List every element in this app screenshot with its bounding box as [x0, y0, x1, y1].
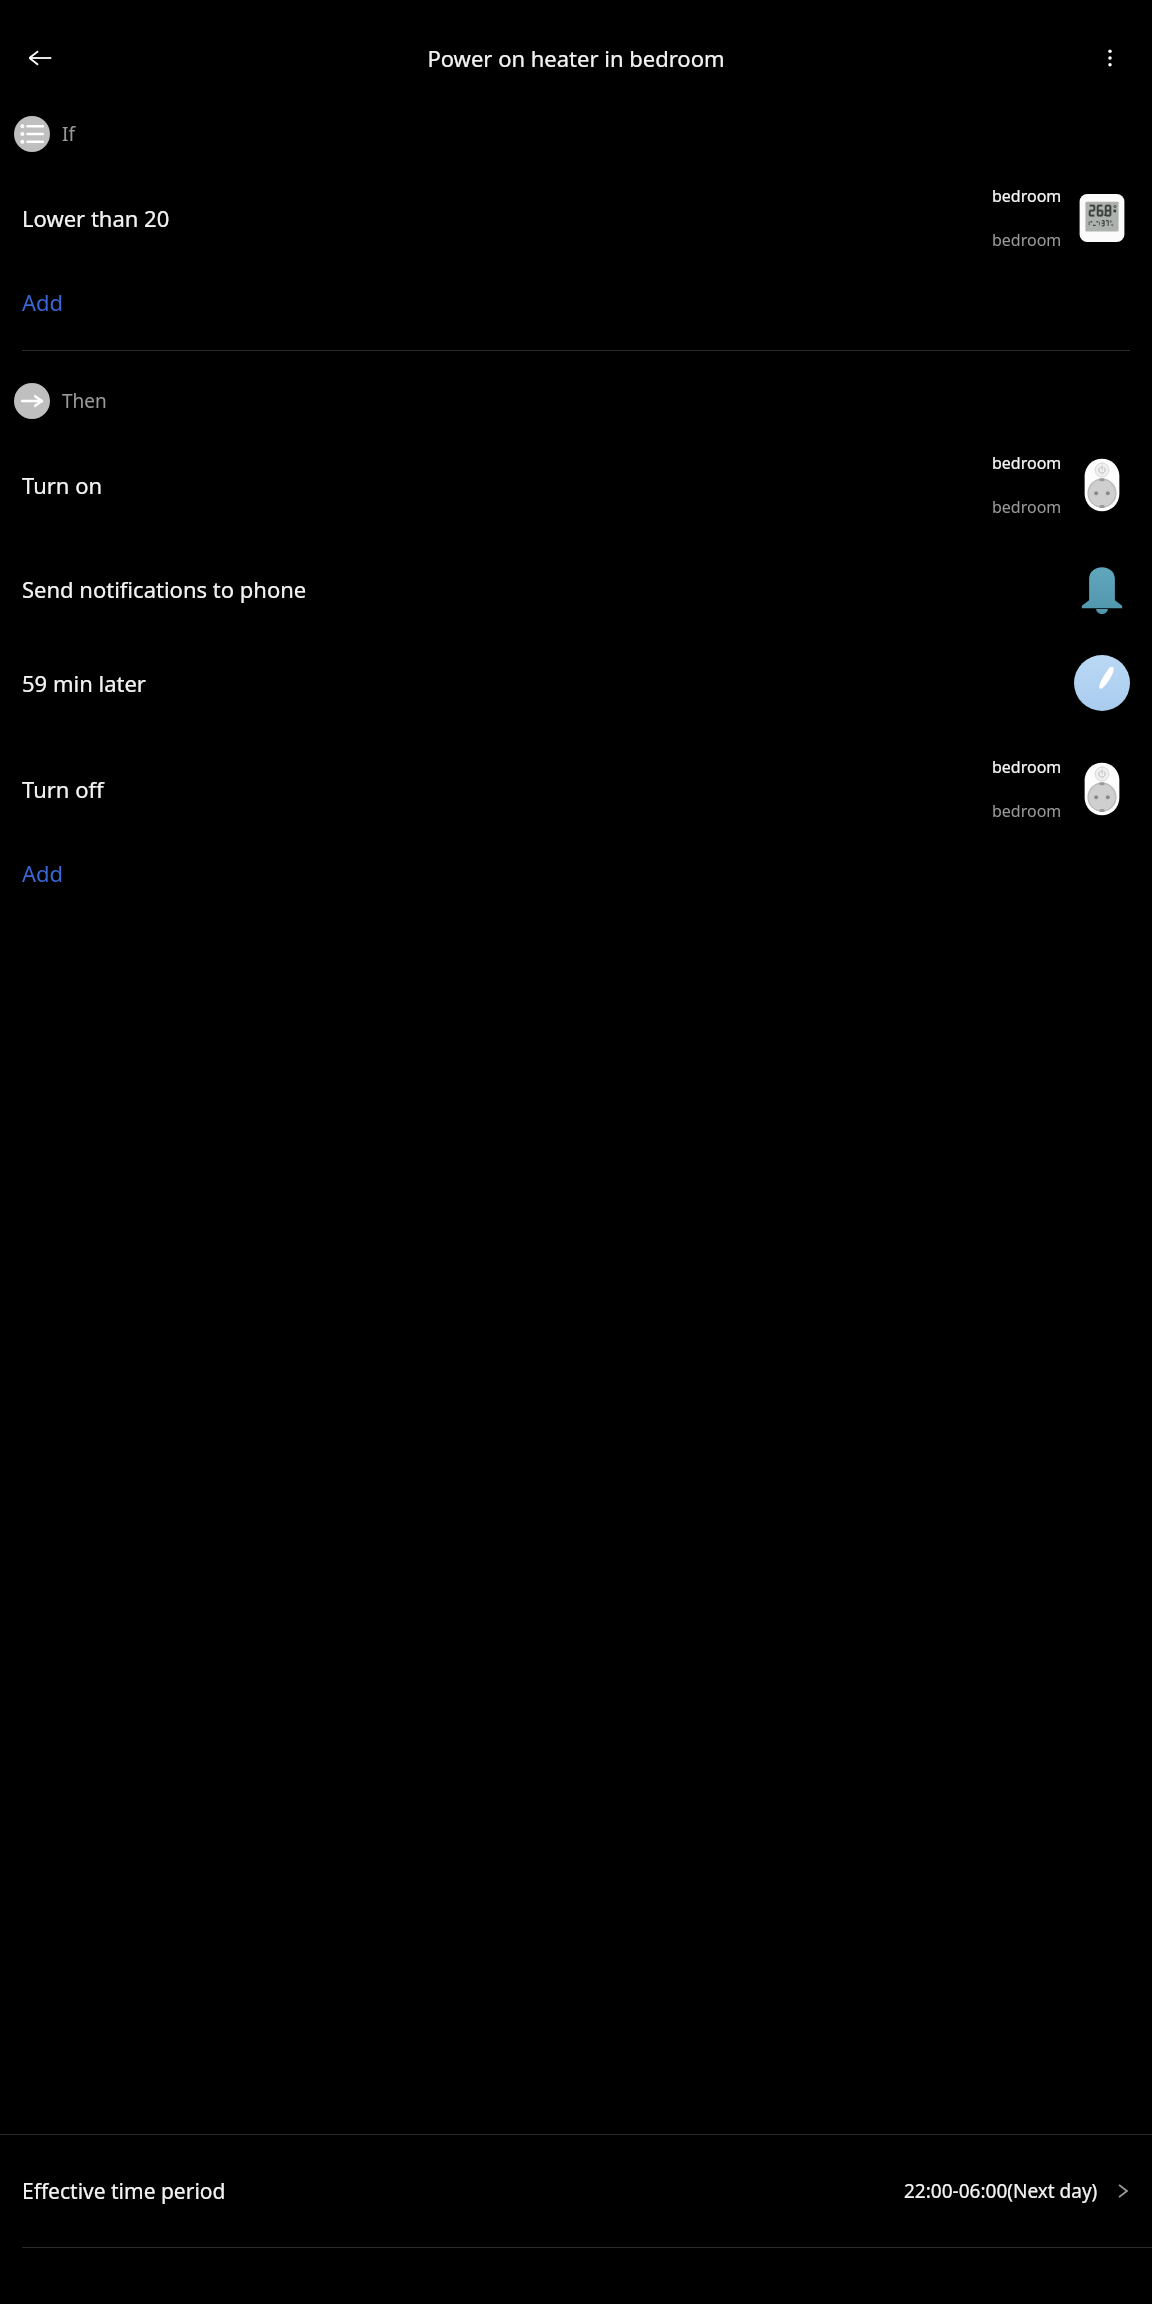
staticText: 59 min later	[22, 668, 1074, 698]
staticText: If	[62, 121, 75, 147]
staticText: bedroom	[992, 229, 1062, 251]
staticText: bedroom	[992, 756, 1062, 778]
button[interactable]: 59 min later	[0, 647, 1152, 719]
button[interactable]: Turn on	[0, 437, 1152, 533]
staticText: Effective time period	[22, 2177, 904, 2206]
staticText: bedroom	[992, 452, 1062, 474]
staticText: Lower than 20	[22, 203, 992, 233]
staticText: bedroom	[992, 496, 1062, 518]
button[interactable]: Back	[14, 32, 66, 84]
staticText: Power on heater in bedroom	[427, 43, 725, 73]
button[interactable]: Add	[0, 266, 1152, 338]
button[interactable]: Add	[0, 837, 1152, 909]
button[interactable]: Effective time period	[0, 2135, 1152, 2247]
staticText: Add	[22, 858, 64, 888]
staticText: Turn on	[22, 470, 992, 500]
staticText: Add	[22, 287, 64, 317]
staticText: Turn off	[22, 774, 992, 804]
button[interactable]: Send notifications to phone	[0, 553, 1152, 625]
button[interactable]: Lower than 20	[0, 170, 1152, 266]
button[interactable]: Turn off	[0, 741, 1152, 837]
staticText: bedroom	[992, 185, 1062, 207]
staticText: bedroom	[992, 800, 1062, 822]
staticText: 22:00-06:00(Next day)	[904, 2178, 1098, 2204]
staticText: Then	[62, 388, 107, 414]
staticText: Send notifications to phone	[22, 574, 1074, 604]
button[interactable]: More options	[1084, 32, 1136, 84]
